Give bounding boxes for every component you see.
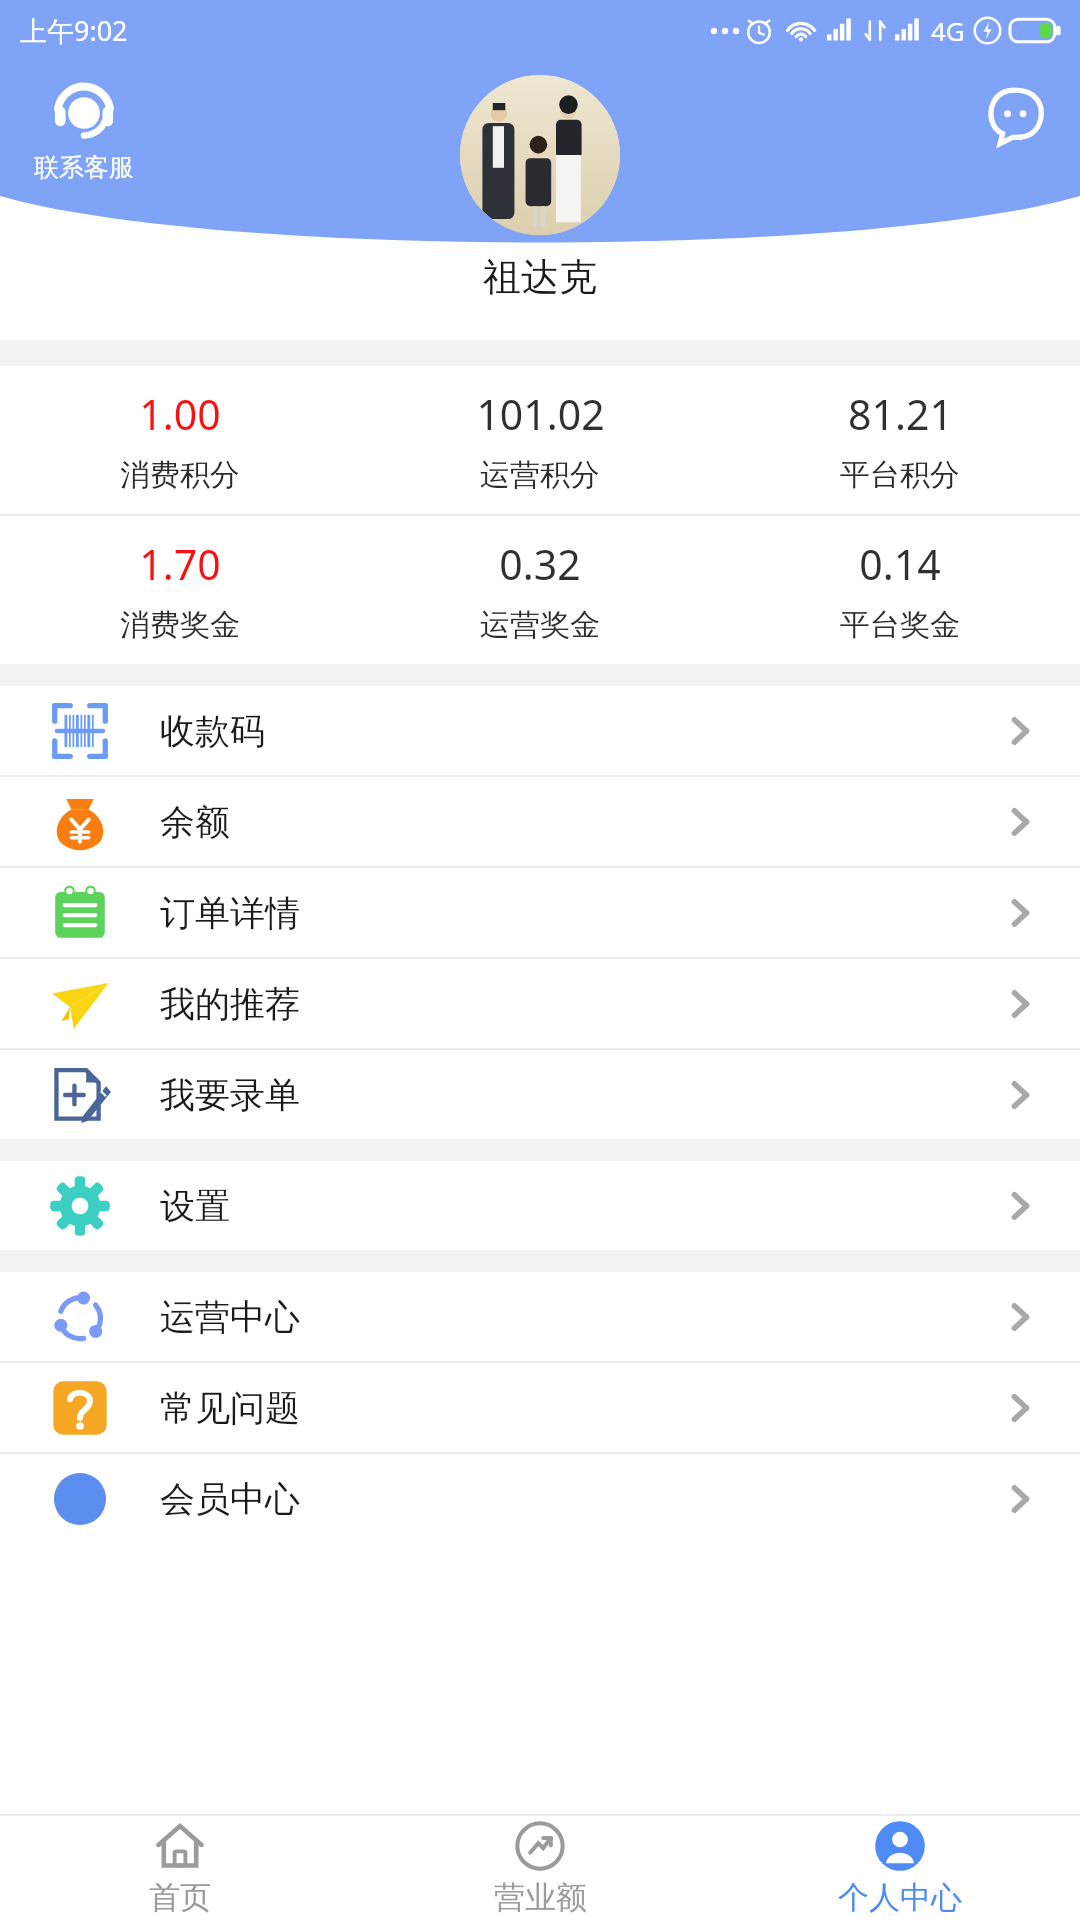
staticText: 0.14 <box>859 536 941 592</box>
button[interactable]: 81.21 <box>720 366 1080 514</box>
button[interactable]: 余额 <box>0 777 1080 866</box>
button[interactable]: 营业额 <box>360 1816 720 1920</box>
staticText: 平台奖金 <box>840 606 960 644</box>
staticText: 首页 <box>149 1878 211 1917</box>
staticText: 余额 <box>160 800 230 844</box>
staticText: 运营积分 <box>480 456 600 494</box>
staticText: 我的推荐 <box>160 982 300 1026</box>
staticText: 营业额 <box>494 1878 587 1917</box>
button[interactable]: Messages <box>980 80 1050 150</box>
staticText: 101.02 <box>476 386 605 442</box>
staticText: 个人中心 <box>838 1878 962 1917</box>
staticText: 0.32 <box>499 536 581 592</box>
button[interactable]: 1.00 <box>0 366 360 514</box>
button[interactable]: Profile photo <box>460 75 620 235</box>
button[interactable]: 首页 <box>0 1816 360 1920</box>
button[interactable]: 101.02 <box>360 366 720 514</box>
button[interactable]: 联系客服 <box>28 78 140 185</box>
button[interactable]: 订单详情 <box>0 868 1080 957</box>
button[interactable]: 我的推荐 <box>0 959 1080 1048</box>
staticText: 收款码 <box>160 709 265 753</box>
staticText: 上午9:02 <box>20 12 128 49</box>
staticText: 我要录单 <box>160 1073 300 1117</box>
staticText: 消费奖金 <box>120 606 240 644</box>
button[interactable]: 收款码 <box>0 686 1080 775</box>
staticText: 平台积分 <box>840 456 960 494</box>
staticText: 联系客服 <box>34 152 134 183</box>
staticText: 1.00 <box>139 386 221 442</box>
staticText: 祖达克 <box>483 253 597 301</box>
button[interactable]: 运营中心 <box>0 1272 1080 1361</box>
staticText: 4G <box>931 13 965 48</box>
staticText: 1.70 <box>139 536 221 592</box>
button[interactable]: 常见问题 <box>0 1363 1080 1452</box>
button[interactable]: 1.70 <box>0 516 360 664</box>
button[interactable]: 会员中心 <box>0 1454 1080 1543</box>
staticText: 会员中心 <box>160 1477 300 1521</box>
button[interactable]: 0.32 <box>360 516 720 664</box>
button[interactable]: 我要录单 <box>0 1050 1080 1139</box>
staticText: 运营中心 <box>160 1295 300 1339</box>
staticText: 设置 <box>160 1184 230 1228</box>
button[interactable]: 个人中心 <box>720 1816 1080 1920</box>
staticText: 订单详情 <box>160 891 300 935</box>
staticText: 消费积分 <box>120 456 240 494</box>
button[interactable]: 0.14 <box>720 516 1080 664</box>
staticText: 81.21 <box>848 386 953 442</box>
staticText: 运营奖金 <box>480 606 600 644</box>
staticText: 常见问题 <box>160 1386 300 1430</box>
button[interactable]: 设置 <box>0 1161 1080 1250</box>
